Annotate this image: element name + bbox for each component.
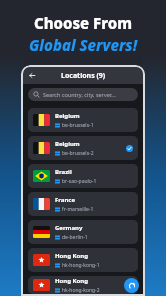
staticText: be-brussels-1 [62, 122, 94, 129]
button[interactable]: Search country, city, server... [28, 88, 138, 101]
button[interactable]: Hong Kong [28, 276, 138, 294]
staticText: Hong Kong [55, 252, 89, 260]
staticText: de-berlin-1 [62, 234, 88, 241]
staticText: Locations (9) [61, 71, 106, 81]
staticText: Germany [55, 224, 83, 232]
staticText: Brazil [55, 168, 72, 176]
button[interactable]: Belgium [28, 108, 138, 132]
button[interactable]: France [28, 192, 138, 216]
staticText: Hong Kong [55, 277, 89, 285]
staticText: fr-marseille-1 [62, 206, 94, 213]
button[interactable]: Germany [28, 220, 138, 244]
staticText: Belgium [55, 112, 80, 120]
staticText: France [55, 196, 76, 204]
staticText: hk-hong-kong-2 [62, 287, 100, 294]
button[interactable]: Brazil [28, 164, 138, 188]
staticText: Search country, city, server... [43, 91, 116, 98]
staticText: br-sao-paulo-1 [62, 178, 97, 185]
staticText: hk-hong-kong-1 [62, 262, 100, 269]
staticText: be-brussels-2 [62, 150, 94, 157]
button[interactable]: Belgium [28, 136, 138, 160]
staticText: Belgium [55, 140, 80, 148]
button[interactable]: Back [26, 69, 39, 82]
button[interactable]: Refresh servers [124, 278, 139, 293]
button[interactable]: Hong Kong [28, 248, 138, 272]
staticText: Choose From [0, 13, 166, 33]
staticText: Global Servers! [0, 35, 166, 55]
